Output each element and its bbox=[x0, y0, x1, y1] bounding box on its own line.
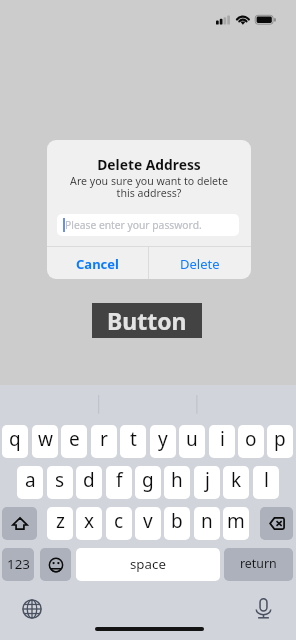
button[interactable]: z bbox=[47, 507, 73, 540]
button[interactable]: l bbox=[253, 466, 279, 499]
button[interactable]: Button bbox=[92, 303, 202, 338]
button[interactable]: x bbox=[76, 507, 102, 540]
button[interactable]: c bbox=[106, 507, 132, 540]
staticText: z bbox=[56, 508, 65, 534]
staticText: n bbox=[201, 508, 213, 534]
button[interactable]: n bbox=[194, 507, 220, 540]
staticText: q bbox=[9, 426, 21, 452]
button[interactable]: Switch keyboard language bbox=[20, 597, 44, 621]
staticText: j bbox=[205, 467, 210, 493]
staticText: Delete Address bbox=[47, 155, 251, 174]
button[interactable]: Cancel bbox=[47, 247, 148, 279]
staticText: h bbox=[171, 467, 183, 493]
staticText: p bbox=[274, 426, 286, 452]
staticText: o bbox=[245, 426, 257, 452]
staticText: Cancel bbox=[76, 255, 119, 273]
staticText: y bbox=[158, 426, 168, 452]
button[interactable]: Dictate bbox=[255, 597, 272, 620]
button[interactable]: o bbox=[238, 425, 264, 458]
staticText: l bbox=[264, 467, 269, 493]
button[interactable]: Emoji bbox=[40, 548, 71, 581]
button[interactable]: v bbox=[135, 507, 161, 540]
staticText: i bbox=[220, 426, 225, 452]
button[interactable]: 123 bbox=[2, 548, 34, 581]
staticText: t bbox=[130, 426, 137, 452]
button[interactable]: h bbox=[164, 466, 190, 499]
button[interactable]: m bbox=[223, 507, 249, 540]
staticText: b bbox=[171, 508, 183, 534]
staticText: v bbox=[143, 508, 153, 534]
staticText: return bbox=[240, 555, 277, 572]
staticText: Delete bbox=[180, 255, 220, 273]
button[interactable]: w bbox=[32, 425, 58, 458]
button[interactable]: g bbox=[135, 466, 161, 499]
staticText: Button bbox=[107, 305, 187, 336]
button[interactable]: space bbox=[76, 548, 220, 581]
staticText: a bbox=[25, 467, 36, 493]
button[interactable]: j bbox=[194, 466, 220, 499]
button[interactable]: Shift bbox=[2, 507, 37, 540]
staticText: w bbox=[38, 426, 53, 452]
button[interactable]: k bbox=[223, 466, 249, 499]
staticText: 123 bbox=[7, 555, 30, 573]
staticText: g bbox=[142, 467, 154, 493]
staticText: r bbox=[100, 426, 108, 452]
staticText: c bbox=[114, 508, 124, 534]
button[interactable]: r bbox=[91, 425, 117, 458]
button[interactable]: p bbox=[267, 425, 293, 458]
staticText: x bbox=[84, 508, 95, 534]
button[interactable]: y bbox=[150, 425, 176, 458]
button[interactable]: s bbox=[47, 466, 73, 499]
staticText: Please enter your password. bbox=[65, 218, 202, 232]
button[interactable]: e bbox=[61, 425, 87, 458]
staticText: space bbox=[130, 555, 166, 573]
staticText: d bbox=[83, 467, 95, 493]
staticText: u bbox=[186, 426, 198, 452]
button[interactable]: b bbox=[164, 507, 190, 540]
button[interactable]: d bbox=[76, 466, 102, 499]
button[interactable]: Delete bbox=[149, 247, 251, 279]
button[interactable]: q bbox=[2, 425, 28, 458]
staticText: k bbox=[231, 467, 242, 493]
staticText: f bbox=[116, 467, 123, 493]
button[interactable]: f bbox=[106, 466, 132, 499]
staticText: e bbox=[69, 426, 80, 452]
button[interactable]: a bbox=[17, 466, 43, 499]
staticText: m bbox=[227, 508, 245, 534]
button[interactable]: Backspace bbox=[260, 507, 293, 540]
button[interactable]: return bbox=[224, 548, 293, 581]
button[interactable]: u bbox=[179, 425, 205, 458]
button[interactable]: Please enter your password. bbox=[57, 214, 239, 236]
button[interactable]: t bbox=[120, 425, 146, 458]
staticText: Are you sure you want to delete this add… bbox=[47, 174, 251, 201]
button[interactable]: i bbox=[209, 425, 235, 458]
staticText: s bbox=[55, 467, 65, 493]
